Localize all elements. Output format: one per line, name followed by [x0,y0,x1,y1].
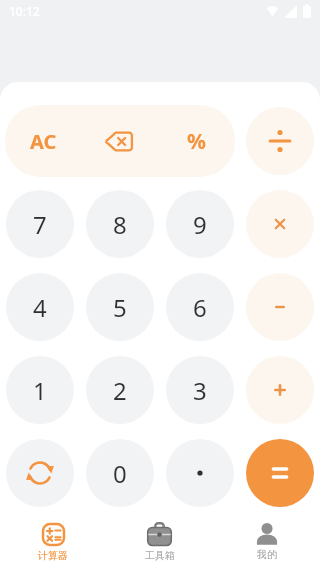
staticText: 我的 [257,548,277,561]
staticText: % [187,127,206,156]
button[interactable]: 我的 [213,514,320,569]
staticText: 计算器 [38,549,68,562]
staticText: 10:12 [9,3,40,19]
staticText: 4 [33,291,47,324]
staticText: AC [30,128,57,155]
staticText: 工具箱 [145,549,175,562]
button[interactable]: 6 [166,273,234,341]
staticText: 8 [113,208,127,241]
button[interactable]: 8 [86,190,154,258]
button[interactable]: 1 [6,356,74,424]
button[interactable]: 7 [6,190,74,258]
staticText: 5 [113,291,127,324]
button[interactable] [166,439,234,507]
button[interactable]: 2 [86,356,154,424]
staticText: 9 [193,208,207,241]
button[interactable]: 计算器 [0,514,106,569]
button[interactable] [246,107,314,175]
button[interactable] [81,105,158,177]
button[interactable] [246,273,314,341]
staticText: 0 [113,457,127,490]
staticText: 1 [33,374,47,407]
button[interactable]: AC [5,105,81,177]
button[interactable]: 工具箱 [106,514,213,569]
button[interactable]: 5 [86,273,154,341]
button[interactable]: 4 [6,273,74,341]
button[interactable] [246,356,314,424]
button[interactable] [6,439,74,507]
button[interactable]: 0 [86,439,154,507]
staticText: 7 [33,208,47,241]
button[interactable] [246,439,314,507]
staticText: 6 [193,291,207,324]
button[interactable]: 9 [166,190,234,258]
staticText: 2 [113,374,127,407]
staticText: 3 [193,374,207,407]
button[interactable] [246,190,314,258]
button[interactable]: 3 [166,356,234,424]
button[interactable]: % [158,105,235,177]
